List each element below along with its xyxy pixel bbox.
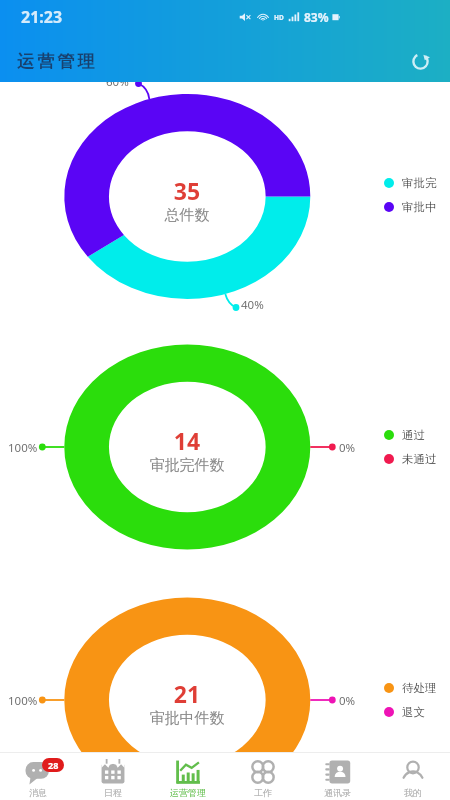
staticText: 总件数 <box>117 206 257 225</box>
staticText: 通过 <box>402 428 425 442</box>
staticText: 待处理 <box>402 681 437 695</box>
staticText: 日程 <box>104 787 122 798</box>
staticText: HD <box>274 13 284 22</box>
button[interactable]: 我的 <box>375 753 450 800</box>
staticText: 83% <box>304 9 329 25</box>
staticText: 审批完 <box>402 176 437 190</box>
staticText: 100% <box>8 440 38 456</box>
staticText: 21 <box>117 678 257 709</box>
staticText: 审批中件数 <box>117 709 257 728</box>
button[interactable]: 28 <box>0 753 75 800</box>
staticText: 28 <box>48 759 59 771</box>
button[interactable]: 通讯录 <box>300 753 375 800</box>
staticText: 100% <box>8 693 38 709</box>
staticText: 40% <box>241 297 264 313</box>
staticText: 我的 <box>404 787 422 798</box>
staticText: 14 <box>117 425 257 456</box>
staticText: 0% <box>339 693 356 709</box>
button[interactable]: Refresh <box>400 41 440 81</box>
staticText: 35 <box>117 175 257 206</box>
staticText: 运营管理 <box>170 787 206 798</box>
staticText: 21:23 <box>21 6 63 28</box>
button[interactable]: 日程 <box>75 753 150 800</box>
staticText: 审批完件数 <box>117 456 257 475</box>
staticText: 0% <box>339 440 356 456</box>
button[interactable]: 工作 <box>225 753 300 800</box>
staticText: 运营管理 <box>17 51 98 72</box>
staticText: 60% <box>106 74 129 90</box>
staticText: 退文 <box>402 705 425 719</box>
staticText: 工作 <box>254 787 272 798</box>
staticText: 审批中 <box>402 200 437 214</box>
staticText: 通讯录 <box>324 787 351 798</box>
staticText: 未通过 <box>402 452 437 466</box>
staticText: 消息 <box>29 787 47 798</box>
button[interactable]: 运营管理 <box>150 753 225 800</box>
